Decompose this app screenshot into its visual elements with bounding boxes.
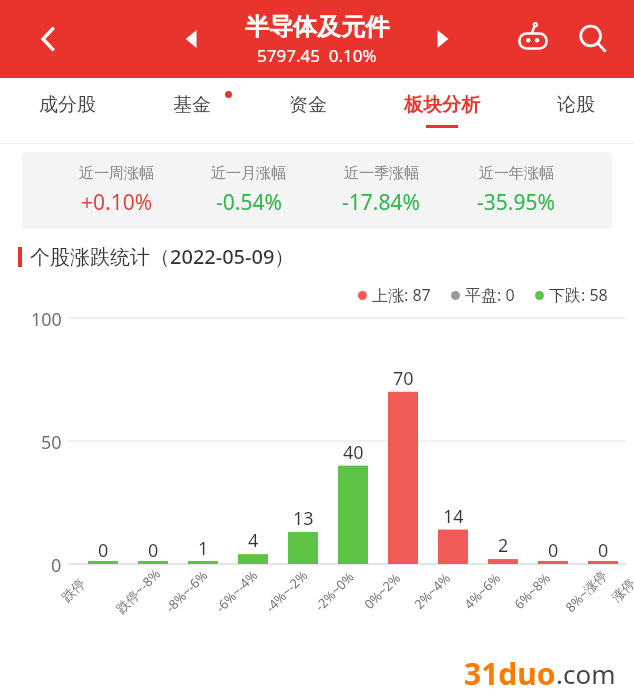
staticText: -17.84%: [342, 188, 420, 217]
staticText: 40: [343, 440, 364, 465]
button[interactable]: 基金: [173, 78, 211, 142]
staticText: -0.54%: [216, 188, 282, 217]
staticText: 8%~涨停: [561, 566, 611, 616]
staticText: -8%~-6%: [161, 566, 212, 616]
staticText: 13: [293, 506, 314, 531]
staticText: .com: [556, 656, 616, 691]
staticText: 4%~6%: [460, 569, 504, 613]
staticText: 平盘: 0: [465, 284, 515, 306]
staticText: 0: [598, 538, 609, 563]
staticText: 4: [248, 528, 259, 553]
staticText: 31duo: [464, 653, 556, 694]
staticText: 0%~2%: [360, 569, 404, 613]
button[interactable]: 板块分析: [404, 78, 480, 142]
staticText: 近一季涨幅: [344, 164, 419, 183]
staticText: 5797.45 0.10%: [257, 44, 377, 67]
staticText: 半导体及元件: [245, 12, 389, 42]
staticText: 14: [443, 504, 464, 529]
staticText: 2: [498, 533, 509, 558]
staticText: 成分股: [39, 93, 96, 117]
staticText: 0: [51, 553, 62, 578]
button[interactable]: AI assistant: [510, 16, 556, 62]
staticText: 涨停: [608, 575, 634, 605]
button[interactable]: 资金: [289, 78, 327, 142]
staticText: 0: [548, 538, 559, 563]
staticText: 跌停~-8%: [112, 565, 164, 617]
staticText: 6%~8%: [510, 569, 554, 613]
staticText: +0.10%: [81, 188, 153, 217]
button[interactable]: Previous sector: [172, 19, 212, 59]
staticText: 个股涨跌统计（2022-05-09）: [30, 243, 295, 270]
staticText: 近一月涨幅: [211, 164, 286, 183]
staticText: -4%~-2%: [261, 566, 312, 616]
staticText: 资金: [289, 93, 327, 117]
staticText: 板块分析: [404, 93, 480, 117]
staticText: -35.95%: [477, 188, 555, 217]
staticText: 100: [31, 307, 62, 332]
button[interactable]: Next sector: [422, 19, 462, 59]
button[interactable]: Search: [570, 16, 616, 62]
staticText: 1: [198, 536, 209, 561]
staticText: 50: [41, 430, 62, 455]
staticText: 跌停: [58, 575, 88, 605]
staticText: 近一周涨幅: [79, 164, 154, 183]
staticText: 下跌: 58: [549, 284, 608, 306]
button[interactable]: 论股: [557, 78, 595, 142]
button[interactable]: Back: [26, 16, 72, 62]
staticText: 上涨: 87: [372, 284, 431, 306]
staticText: 70: [393, 366, 414, 391]
staticText: 0: [148, 538, 159, 563]
staticText: 2%~4%: [410, 569, 454, 613]
staticText: 0: [98, 538, 109, 563]
staticText: 基金: [173, 93, 211, 117]
staticText: -6%~-4%: [211, 566, 262, 616]
staticText: 近一年涨幅: [479, 164, 554, 183]
button[interactable]: 成分股: [39, 78, 96, 142]
staticText: 论股: [557, 93, 595, 117]
staticText: -2%~0%: [311, 567, 358, 615]
